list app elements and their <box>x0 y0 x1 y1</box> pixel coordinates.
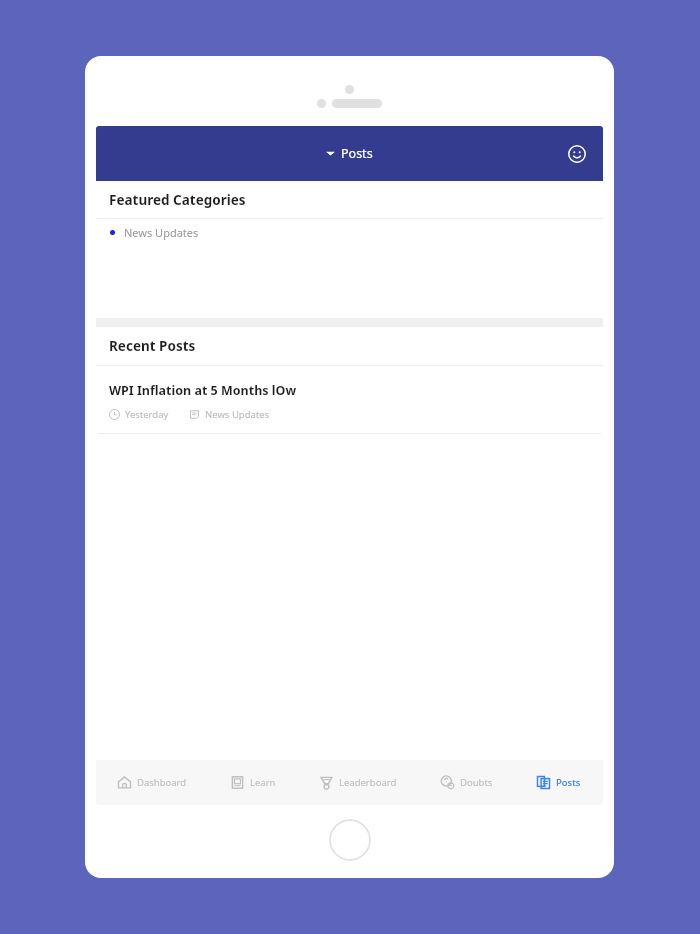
button[interactable]: Leaderboard <box>298 760 418 805</box>
staticText: Doubts <box>460 776 493 789</box>
button[interactable]: News Updates <box>96 219 603 245</box>
button[interactable]: Home <box>329 819 371 861</box>
staticText: Yesterday <box>125 408 169 421</box>
staticText: Leaderboard <box>339 776 397 789</box>
button[interactable]: WPI Inflation at 5 Months lOw <box>96 366 603 433</box>
button[interactable]: Posts <box>514 760 603 805</box>
button[interactable]: Learn <box>207 760 298 805</box>
staticText: WPI Inflation at 5 Months lOw <box>109 382 297 399</box>
staticText: Recent Posts <box>109 337 196 355</box>
button[interactable]: Doubts <box>418 760 514 805</box>
staticText: News Updates <box>205 408 270 421</box>
staticText: Posts <box>341 145 373 162</box>
button[interactable]: Posts <box>318 141 381 166</box>
staticText: News Updates <box>124 225 199 240</box>
staticText: Featured Categories <box>109 191 246 209</box>
staticText: Dashboard <box>137 776 187 789</box>
staticText: Posts <box>556 776 581 789</box>
button[interactable]: Dashboard <box>96 760 207 805</box>
button[interactable]: Profile <box>561 138 593 170</box>
staticText: Learn <box>250 776 276 789</box>
